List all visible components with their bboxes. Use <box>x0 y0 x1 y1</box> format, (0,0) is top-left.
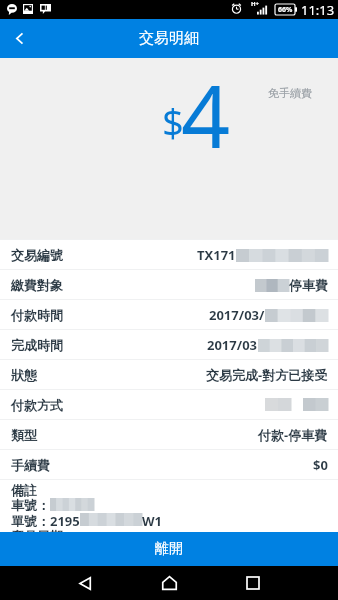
button[interactable]: 類型 <box>0 420 338 449</box>
button[interactable]: 手續費 <box>0 450 338 479</box>
staticText: 停車費 <box>289 277 328 293</box>
staticText: 交易完成-對方已接受 <box>206 366 328 384</box>
button[interactable]: Home <box>141 566 197 600</box>
staticText: 離開 <box>155 540 183 558</box>
staticText: 交易編號 <box>11 247 63 263</box>
staticText: 付款時間 <box>11 307 63 323</box>
staticText: 完成時間 <box>11 337 63 353</box>
button[interactable]: Recent apps <box>225 566 281 600</box>
staticText: 手續費 <box>11 457 50 473</box>
staticText: 付款-停車費 <box>258 426 328 444</box>
staticText: TX171 <box>197 246 236 264</box>
staticText: 付款方式 <box>11 397 63 413</box>
button[interactable]: 完成時間 <box>0 330 338 359</box>
staticText: W1 <box>142 512 163 527</box>
staticText: $0 <box>313 456 328 474</box>
staticText: 11:13 <box>301 1 335 19</box>
staticText: $ <box>162 96 184 148</box>
staticText: H+ <box>251 0 260 8</box>
staticText: 免手續費 <box>268 86 312 100</box>
button[interactable]: Back <box>0 19 39 58</box>
staticText: 備註 <box>11 482 37 497</box>
staticText: 2017/03 <box>207 336 258 354</box>
staticText: 交易明細 <box>139 29 199 48</box>
staticText: 產品日期：2017-03-07 <box>11 527 144 542</box>
staticText: 2017/03/ <box>209 306 265 324</box>
staticText: 繳費對象 <box>11 277 63 293</box>
button[interactable]: 繳費對象 <box>0 270 338 299</box>
staticText: 狀態 <box>11 367 37 383</box>
button[interactable]: Back <box>57 566 113 600</box>
staticText: 4 <box>181 56 231 173</box>
staticText: 車號： <box>11 497 50 512</box>
staticText: 66% <box>278 5 293 15</box>
button[interactable]: 付款方式 <box>0 390 338 419</box>
staticText: 單號：2195 <box>11 512 80 527</box>
button[interactable]: 離開 <box>0 532 338 566</box>
button[interactable]: 狀態 <box>0 360 338 389</box>
button[interactable]: 付款時間 <box>0 300 338 329</box>
staticText: 類型 <box>11 427 37 443</box>
button[interactable]: 交易編號 <box>0 240 338 269</box>
